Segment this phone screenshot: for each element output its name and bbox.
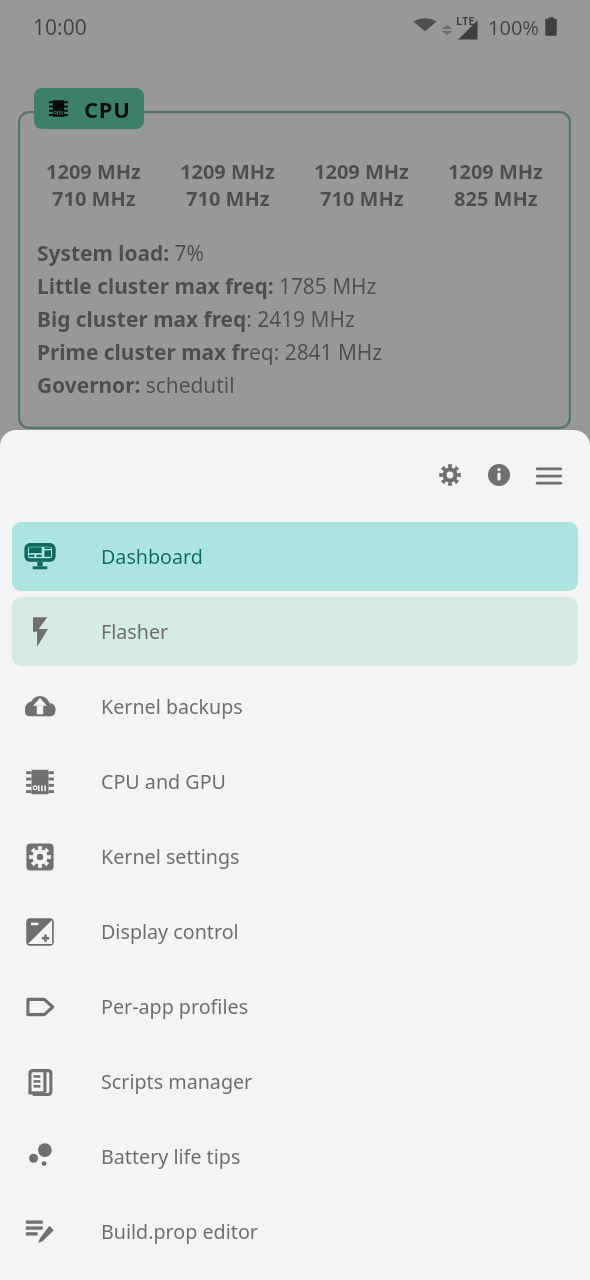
staticText: Battery life tips: [101, 1143, 241, 1170]
staticText: CPU and GPU: [101, 768, 226, 795]
button[interactable]: About: [474, 450, 523, 499]
staticText: 1209 MHz: [448, 158, 543, 185]
staticText: 100%: [488, 14, 539, 41]
button[interactable]: Kernel settings: [12, 822, 578, 891]
staticText: 1209 MHz: [314, 158, 409, 185]
staticText: 825 MHz: [454, 185, 538, 212]
staticText: Governor: schedutil: [37, 371, 235, 399]
staticText: System load: 7%: [37, 239, 204, 267]
staticText: 1209 MHz: [180, 158, 275, 185]
staticText: Kernel backups: [101, 693, 243, 720]
staticText: Scripts manager: [101, 1068, 253, 1095]
staticText: Big cluster max freq: 2419 MHz: [37, 305, 355, 333]
staticText: Little cluster max freq: 1785 MHz: [37, 272, 377, 300]
staticText: Flasher: [101, 618, 169, 645]
button[interactable]: Build.prop editor: [12, 1197, 578, 1266]
staticText: 710 MHz: [186, 185, 270, 212]
staticText: Kernel settings: [101, 843, 240, 870]
staticText: 1209 MHz: [46, 158, 141, 185]
staticText: Build.prop editor: [101, 1218, 258, 1245]
staticText: 10:00: [33, 13, 87, 42]
button[interactable]: Display control: [12, 897, 578, 966]
button[interactable]: Battery life tips: [12, 1122, 578, 1191]
staticText: LTE: [456, 13, 475, 28]
button[interactable]: Flasher: [12, 597, 578, 666]
staticText: 710 MHz: [320, 185, 404, 212]
button[interactable]: CPU and GPU: [12, 747, 578, 816]
staticText: Prime cluster max freq: 2841 MHz: [37, 338, 383, 366]
button[interactable]: Kernel backups: [12, 672, 578, 741]
staticText: 710 MHz: [52, 185, 136, 212]
staticText: CPU: [84, 94, 131, 124]
button[interactable]: Dashboard: [12, 522, 578, 591]
staticText: Dashboard: [101, 543, 203, 570]
button[interactable]: Per-app profiles: [12, 972, 578, 1041]
button[interactable]: Scripts manager: [12, 1047, 578, 1116]
button[interactable]: Menu: [523, 449, 575, 501]
staticText: Per-app profiles: [101, 993, 249, 1020]
button[interactable]: Settings: [425, 450, 474, 499]
staticText: Display control: [101, 918, 239, 945]
